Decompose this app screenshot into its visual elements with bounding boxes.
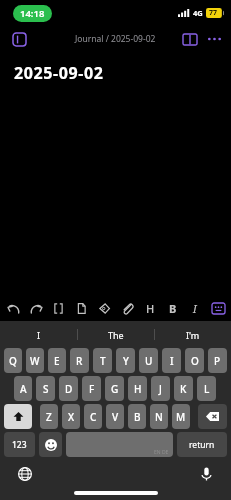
button[interactable]: Emoji — [39, 432, 62, 457]
staticText: E — [54, 354, 60, 368]
staticText: B — [169, 301, 177, 316]
button[interactable]: Y — [116, 348, 135, 373]
button[interactable]: J — [151, 376, 170, 401]
button[interactable]: B — [163, 298, 183, 318]
button[interactable]: V — [106, 404, 124, 429]
button[interactable]: X — [62, 404, 80, 429]
staticText: 77 — [209, 8, 218, 18]
button[interactable]: Insert file — [71, 298, 91, 318]
button[interactable]: More options — [202, 27, 226, 51]
staticText: I — [170, 354, 174, 368]
button[interactable]: G — [105, 376, 124, 401]
button[interactable]: Undo — [3, 298, 23, 318]
staticText: T — [100, 354, 106, 368]
button[interactable]: C — [84, 404, 102, 429]
button[interactable]: S — [36, 376, 55, 401]
button[interactable]: Open book — [178, 27, 202, 51]
button[interactable]: Space — [66, 432, 173, 457]
staticText: EN DE — [154, 449, 169, 456]
button[interactable]: K — [174, 376, 193, 401]
button[interactable]: Hide keyboard — [208, 298, 228, 318]
button[interactable]: T — [93, 348, 112, 373]
staticText: B — [134, 410, 141, 424]
button[interactable]: W — [26, 348, 44, 373]
button[interactable]: Backspace — [198, 404, 227, 429]
button[interactable]: I — [185, 298, 205, 318]
button[interactable]: D — [59, 376, 78, 401]
staticText: C — [90, 410, 97, 424]
button[interactable]: I — [0, 321, 77, 348]
button[interactable]: M — [172, 404, 190, 429]
staticText: H — [134, 382, 142, 396]
button[interactable]: B — [128, 404, 146, 429]
button[interactable]: Toggle sidebar — [7, 27, 31, 51]
button[interactable]: Redo — [26, 298, 46, 318]
staticText: W — [30, 354, 40, 368]
staticText: Z — [46, 410, 52, 424]
staticText: I — [193, 301, 197, 316]
staticText: 123 — [12, 439, 27, 451]
staticText: R — [76, 354, 83, 368]
staticText: Y — [123, 354, 129, 368]
staticText: G — [111, 382, 119, 396]
staticText: K — [180, 382, 187, 396]
button[interactable]: I — [162, 348, 181, 373]
staticText: 14:18 — [20, 7, 45, 20]
staticText: U — [145, 354, 153, 368]
button[interactable]: The — [78, 321, 154, 348]
button[interactable]: P — [208, 348, 227, 373]
staticText: L — [204, 382, 210, 396]
staticText: N — [155, 410, 163, 424]
button[interactable]: O — [185, 348, 204, 373]
staticText: 2025-09-02 — [14, 62, 104, 84]
staticText: X — [68, 410, 75, 424]
staticText: 4G — [193, 8, 203, 18]
button[interactable]: N — [150, 404, 168, 429]
button[interactable]: return — [177, 432, 227, 457]
button[interactable]: Q — [4, 348, 22, 373]
button[interactable]: Tag — [94, 298, 114, 318]
button[interactable]: 123 — [4, 432, 35, 457]
button[interactable]: Shift — [4, 404, 32, 429]
staticText: H — [146, 301, 155, 316]
button[interactable]: Brackets — [48, 298, 68, 318]
button[interactable]: Z — [40, 404, 58, 429]
staticText: I'm — [186, 329, 200, 341]
staticText: O — [191, 354, 199, 368]
staticText: M — [176, 410, 186, 424]
staticText: return — [189, 439, 215, 451]
button[interactable]: H — [140, 298, 160, 318]
staticText: I — [37, 329, 41, 341]
staticText: A — [20, 382, 27, 396]
staticText: V — [112, 410, 119, 424]
button[interactable]: E — [48, 348, 66, 373]
button[interactable]: A — [14, 376, 32, 401]
staticText: D — [65, 382, 73, 396]
staticText: J — [159, 382, 162, 396]
button[interactable]: R — [70, 348, 89, 373]
button[interactable]: Attach — [117, 298, 137, 318]
button[interactable]: F — [82, 376, 101, 401]
button[interactable]: L — [197, 376, 216, 401]
button[interactable]: Change keyboard language — [13, 462, 37, 486]
button[interactable]: U — [139, 348, 158, 373]
staticText: Journal / 2025-09-02 — [75, 33, 156, 45]
staticText: Q — [9, 354, 17, 368]
staticText: S — [43, 382, 49, 396]
button[interactable]: H — [128, 376, 147, 401]
button[interactable]: I'm — [155, 321, 231, 348]
staticText: P — [214, 354, 221, 368]
staticText: F — [89, 382, 95, 396]
staticText: The — [108, 329, 124, 341]
button[interactable]: Voice input — [194, 462, 218, 486]
